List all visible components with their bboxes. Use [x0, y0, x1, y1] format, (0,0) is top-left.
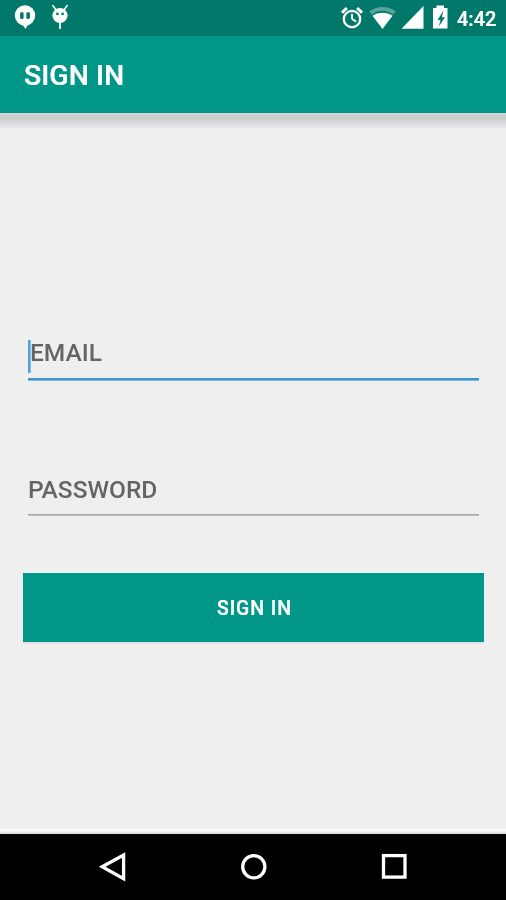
staticText: SIGN IN	[24, 59, 125, 92]
staticText: PASSWORD	[28, 475, 158, 504]
button[interactable]: Home	[228, 841, 280, 893]
button[interactable]: PASSWORD	[23, 467, 483, 519]
button[interactable]: Back	[87, 841, 139, 893]
button[interactable]: EMAIL	[23, 331, 483, 383]
staticText: EMAIL	[30, 338, 103, 367]
staticText: 4:42	[457, 7, 497, 30]
button[interactable]: SIGN IN	[23, 573, 484, 642]
staticText: SIGN IN	[217, 597, 292, 620]
button[interactable]: Recent apps	[368, 841, 420, 893]
